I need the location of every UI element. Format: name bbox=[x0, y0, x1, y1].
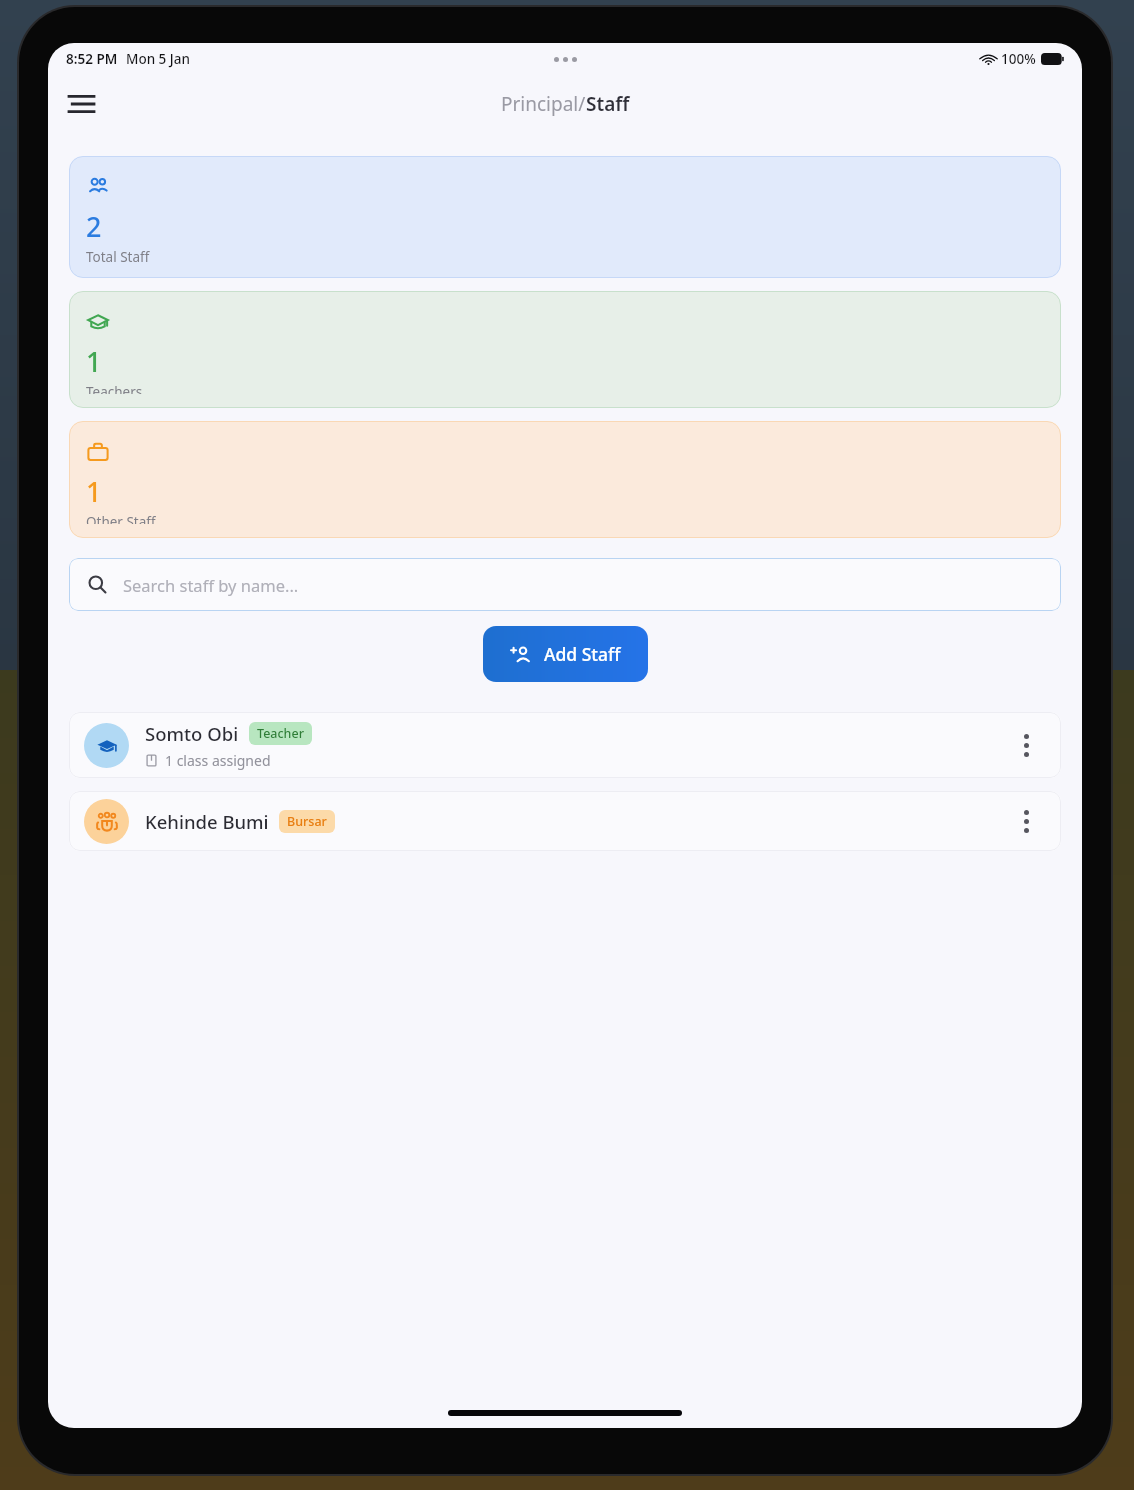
staticText: Add Staff bbox=[544, 642, 621, 666]
button[interactable]: More options for Somto Obi bbox=[1006, 725, 1046, 765]
button[interactable]: Add Staff bbox=[483, 626, 648, 682]
staticText: Principal/ bbox=[501, 91, 586, 117]
button[interactable]: Somto Obi bbox=[69, 712, 1061, 778]
staticText: 1 bbox=[86, 343, 102, 380]
staticText: Bursar bbox=[287, 813, 327, 830]
button[interactable]: Kehinde Bumi bbox=[69, 791, 1061, 851]
button[interactable]: Menu bbox=[58, 81, 104, 127]
staticText: Teachers bbox=[86, 383, 143, 394]
staticText: 8:52 PM bbox=[66, 50, 118, 68]
button[interactable]: More options for Kehinde Bumi bbox=[1006, 801, 1046, 841]
staticText: Kehinde Bumi bbox=[145, 809, 269, 834]
button[interactable]: Search staff by name... bbox=[69, 558, 1061, 611]
staticText: Mon 5 Jan bbox=[126, 50, 190, 68]
staticText: 1 class assigned bbox=[165, 751, 271, 770]
staticText: Somto Obi bbox=[145, 721, 239, 746]
staticText: Search staff by name... bbox=[123, 574, 299, 596]
button[interactable]: 2 bbox=[69, 156, 1061, 278]
staticText: Total Staff bbox=[86, 248, 150, 264]
button[interactable]: 1 bbox=[69, 421, 1061, 538]
staticText: Staff bbox=[586, 91, 630, 117]
staticText: 2 bbox=[86, 208, 102, 245]
staticText: 1 bbox=[86, 473, 102, 510]
staticText: 100% bbox=[1001, 50, 1036, 68]
staticText: Teacher bbox=[257, 725, 304, 742]
button[interactable]: 1 bbox=[69, 291, 1061, 408]
staticText: Other Staff bbox=[86, 513, 156, 524]
